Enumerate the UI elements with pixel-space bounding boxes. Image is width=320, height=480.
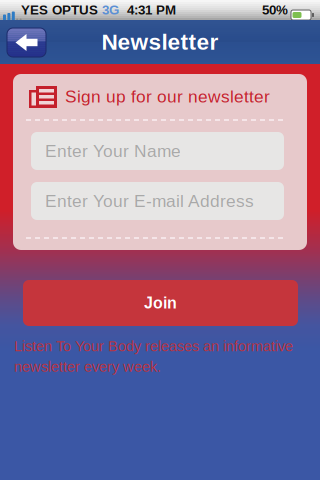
button[interactable]: Enter Your E-mail Address	[31, 182, 284, 220]
button[interactable]: Back	[7, 28, 46, 57]
staticText: YES OPTUS	[21, 3, 98, 17]
staticText: Enter Your E-mail Address	[45, 191, 254, 211]
staticText: Newsletter	[101, 29, 218, 55]
staticText: newsletter every week.	[14, 358, 161, 375]
staticText: Enter Your Name	[45, 141, 181, 161]
staticText: 3G	[102, 3, 119, 17]
staticText: 50%	[262, 3, 288, 17]
staticText: Listen To Your Body releases an informat…	[14, 338, 293, 354]
staticText: 4:31 PM	[127, 3, 176, 17]
button[interactable]: Enter Your Name	[31, 132, 284, 170]
staticText: Sign up for our newsletter	[65, 87, 270, 106]
staticText: Join	[144, 294, 177, 312]
button[interactable]: Join	[23, 280, 298, 326]
